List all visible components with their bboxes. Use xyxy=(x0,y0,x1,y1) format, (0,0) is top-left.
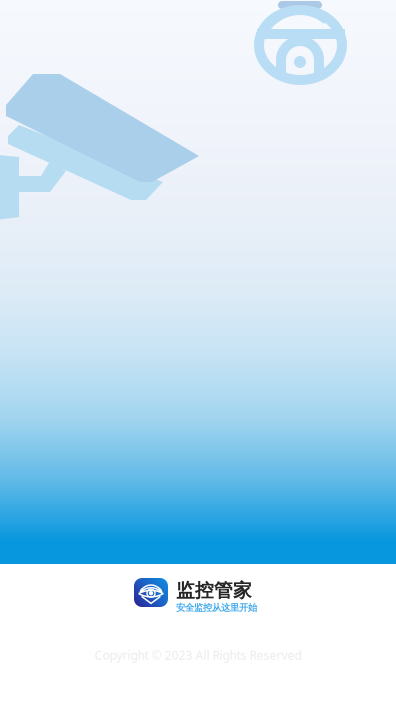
staticText: Copyright © 2023 All Rights Reserved xyxy=(94,647,301,663)
staticText: 安全监控从这里开始 xyxy=(176,602,257,613)
staticText: 监控管家 xyxy=(176,579,252,602)
